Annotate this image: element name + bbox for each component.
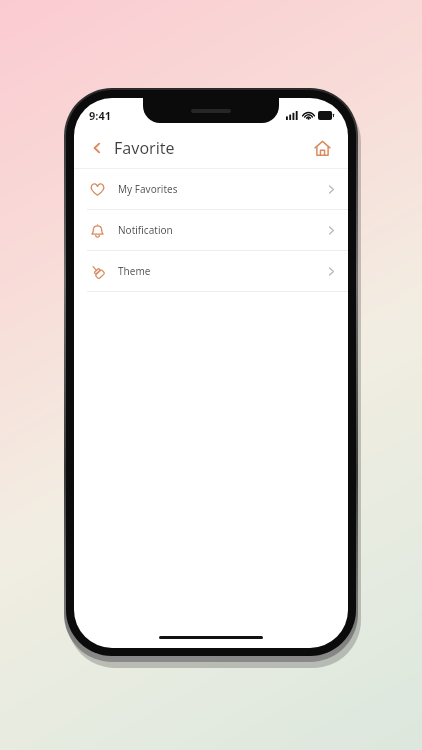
staticText: Theme: [118, 264, 151, 278]
staticText: Notification: [118, 223, 173, 237]
button[interactable]: My Favorites: [74, 169, 348, 209]
button[interactable]: Home: [308, 134, 336, 162]
staticText: 9:41: [89, 108, 111, 123]
staticText: My Favorites: [118, 182, 178, 196]
button[interactable]: Notification: [74, 210, 348, 250]
button[interactable]: Theme: [74, 251, 348, 291]
button[interactable]: Back: [84, 135, 110, 161]
staticText: Favorite: [114, 137, 175, 159]
